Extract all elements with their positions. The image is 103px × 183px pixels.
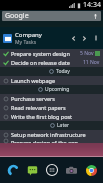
button[interactable]: Write the first blog post xyxy=(0,112,103,121)
staticText: Prepare design of the app xyxy=(11,139,78,143)
staticText: Write the first blog post xyxy=(11,113,73,120)
button[interactable]: Later xyxy=(0,121,103,130)
button[interactable]: Messaging xyxy=(25,163,39,177)
staticText: Google xyxy=(5,11,29,21)
button[interactable]: Prepare system design xyxy=(0,49,103,58)
button[interactable]: Apps xyxy=(45,163,59,177)
staticText: Purchase servers xyxy=(11,95,55,102)
button[interactable]: Decide on release date xyxy=(0,58,103,67)
button[interactable]: Phone xyxy=(6,163,20,177)
button[interactable]: Setup network infrastructure xyxy=(0,130,103,139)
staticText: Upcoming xyxy=(45,86,70,93)
staticText: Company xyxy=(15,31,42,39)
staticText: My Tasks xyxy=(15,39,37,46)
button[interactable]: Upcoming xyxy=(0,85,103,94)
button[interactable]: Google xyxy=(2,11,101,21)
button[interactable]: Camera xyxy=(64,163,78,177)
staticText: Today xyxy=(56,68,70,75)
staticText: Read relevant papers xyxy=(11,104,66,111)
button[interactable]: Purchase servers xyxy=(0,94,103,103)
staticText: Later xyxy=(57,122,70,129)
button[interactable]: Company xyxy=(0,27,103,49)
button[interactable]: Launch webpage xyxy=(0,76,103,85)
button[interactable]: Chrome xyxy=(84,163,98,177)
staticText: Launch webpage xyxy=(11,77,55,84)
button[interactable]: Prepare design of the app xyxy=(0,139,103,143)
staticText: 11 Nov xyxy=(83,59,100,66)
button[interactable]: Next xyxy=(81,35,88,42)
staticText: 5 Nov xyxy=(80,50,94,57)
button[interactable]: Add task xyxy=(92,34,100,42)
staticText: Setup network infrastructure xyxy=(11,131,86,138)
button[interactable]: Previous xyxy=(70,35,77,42)
staticText: Decide on release date xyxy=(11,59,70,66)
staticText: 14:34 xyxy=(83,0,101,10)
button[interactable]: Read relevant papers xyxy=(0,103,103,112)
staticText: Prepare system design xyxy=(11,50,70,57)
button[interactable]: Today xyxy=(0,67,103,76)
